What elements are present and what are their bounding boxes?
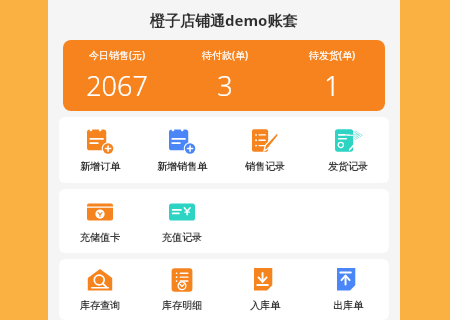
button[interactable]: 出库单 xyxy=(306,259,389,320)
button[interactable]: 入库单 xyxy=(223,259,306,320)
staticText: 充值记录 xyxy=(162,231,202,244)
staticText: 出库单 xyxy=(333,299,363,312)
staticText: 新增订单 xyxy=(80,160,120,173)
button[interactable]: 发货记录 xyxy=(306,117,389,183)
staticText: 2067 xyxy=(86,67,148,104)
staticText: 橙子店铺通demo账套 xyxy=(150,10,298,30)
staticText: 1 xyxy=(324,67,340,104)
staticText: 库存查询 xyxy=(80,299,120,312)
button[interactable]: 新增订单 xyxy=(59,117,141,183)
button[interactable]: 库存查询 xyxy=(59,259,141,320)
staticText: 入库单 xyxy=(250,299,280,312)
staticText: 发货记录 xyxy=(328,160,368,173)
staticText: 3 xyxy=(217,67,233,104)
staticText: 充储值卡 xyxy=(80,231,120,244)
button[interactable]: 新增销售单 xyxy=(141,117,223,183)
staticText: 待付款(单) xyxy=(202,48,248,62)
staticText: 今日销售(元) xyxy=(89,48,145,62)
button[interactable]: 销售记录 xyxy=(223,117,306,183)
button[interactable]: 充储值卡 xyxy=(59,189,141,253)
button[interactable]: 充值记录 xyxy=(141,189,223,253)
button[interactable]: 库存明细 xyxy=(141,259,223,320)
staticText: 新增销售单 xyxy=(157,160,207,173)
button[interactable]: 今日销售(元) xyxy=(63,40,385,111)
staticText: 库存明细 xyxy=(162,299,202,312)
staticText: 销售记录 xyxy=(245,160,285,173)
staticText: 待发货(单) xyxy=(309,48,355,62)
